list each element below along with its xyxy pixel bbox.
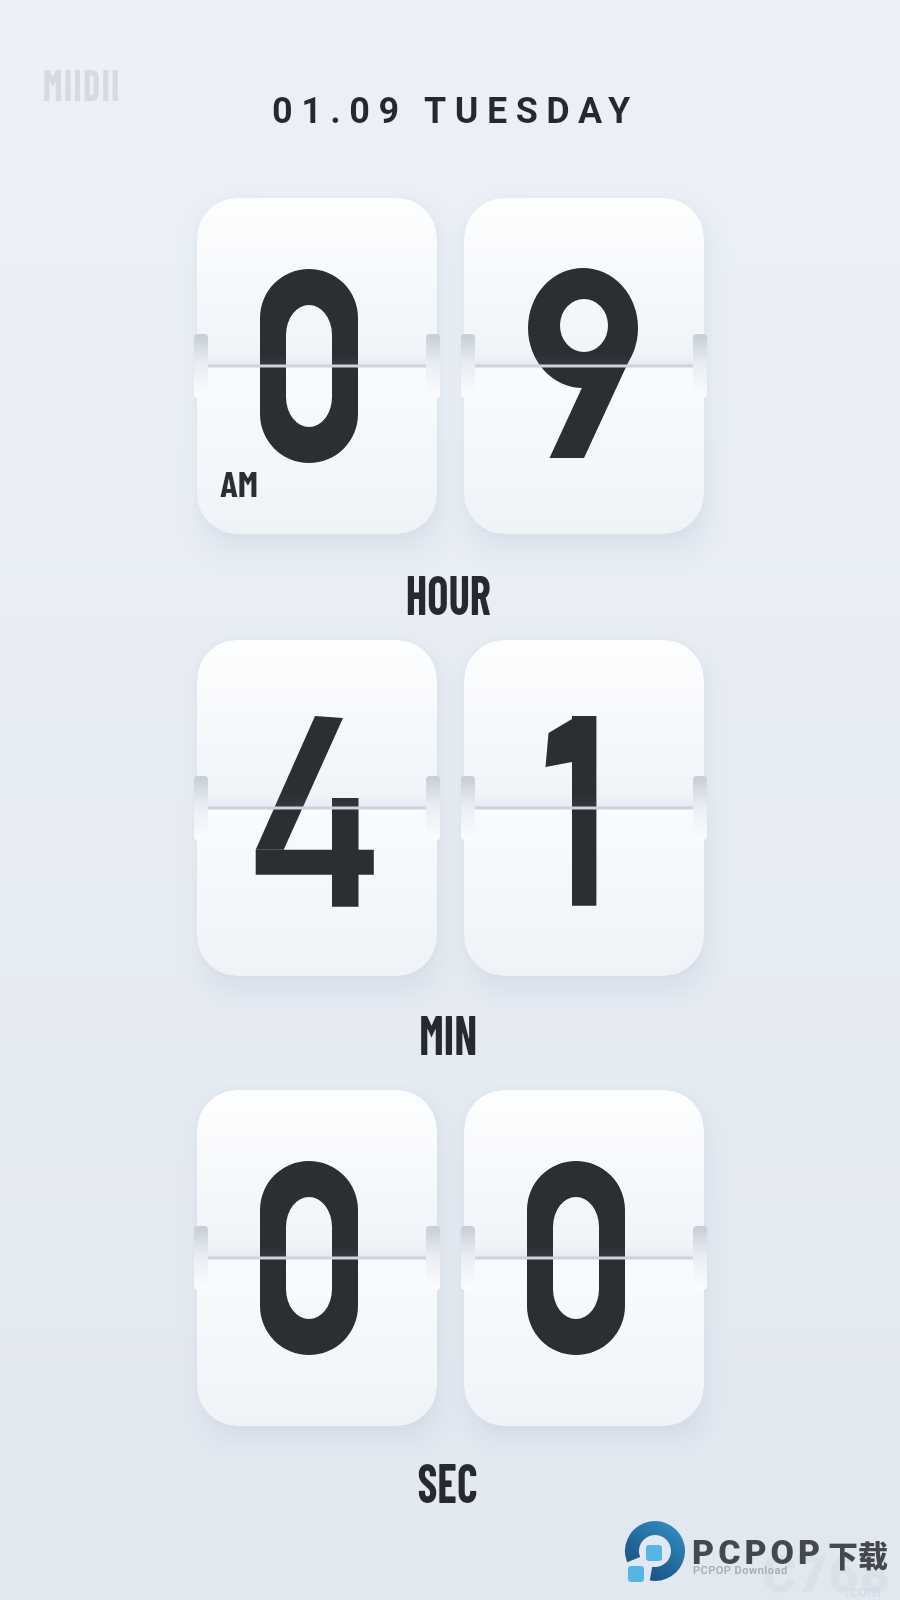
staticText: PCPOP Download (693, 1564, 788, 1577)
staticText: HOUR (406, 559, 491, 626)
button[interactable] (464, 640, 704, 976)
staticText: .com (845, 1582, 881, 1600)
staticText: SEC (418, 1447, 478, 1514)
button[interactable] (197, 1090, 437, 1426)
staticText: MIIDII (43, 57, 121, 110)
button[interactable]: 01.09 TUESDAY (272, 90, 639, 132)
button[interactable] (464, 198, 704, 534)
button[interactable] (197, 640, 437, 976)
staticText: PCPOP (692, 1532, 825, 1572)
staticText: MIN (419, 999, 478, 1066)
button[interactable] (464, 1090, 704, 1426)
staticText: C768 (762, 1544, 891, 1600)
staticText: 下载 (828, 1532, 888, 1575)
staticText: AM (220, 460, 259, 504)
button[interactable]: AM (197, 198, 437, 534)
